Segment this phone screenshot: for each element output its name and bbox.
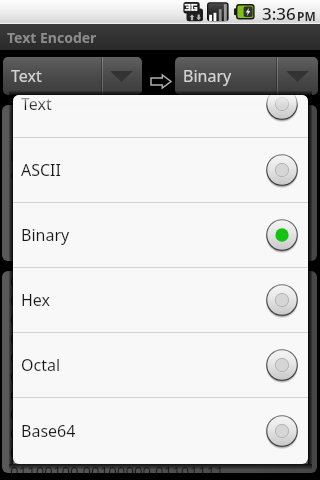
staticText: 3:36 <box>262 2 296 25</box>
staticText: ASCII <box>21 159 61 181</box>
staticText: here is some text to be encoded into bin… <box>10 107 171 184</box>
staticText: Base64 <box>21 420 76 442</box>
button[interactable]: Octal <box>13 333 308 397</box>
staticText: Hex <box>21 289 51 311</box>
button[interactable]: 01101000 01100101 01110010 01100101 0010… <box>2 271 317 473</box>
staticText: Octal <box>21 354 61 376</box>
staticText: Text <box>11 65 42 87</box>
staticText: Text <box>21 95 52 115</box>
button[interactable]: Binary <box>13 203 308 267</box>
staticText: PM <box>297 8 316 24</box>
button[interactable]: Binary <box>175 57 318 95</box>
button[interactable]: here is some text to be encoded into bin… <box>2 105 317 261</box>
staticText: 01101000 01100101 01110010 01100101 0010… <box>10 271 224 473</box>
staticText: Text Encoder <box>7 28 97 47</box>
staticText: Binary <box>21 224 70 246</box>
other: Convert <box>150 74 172 89</box>
button[interactable]: ASCII <box>13 138 308 202</box>
staticText: Binary <box>183 65 232 87</box>
button[interactable]: Base64 <box>13 398 308 463</box>
button[interactable]: Text <box>13 95 308 137</box>
button[interactable]: Text <box>3 57 142 95</box>
button[interactable]: Hex <box>13 268 308 332</box>
